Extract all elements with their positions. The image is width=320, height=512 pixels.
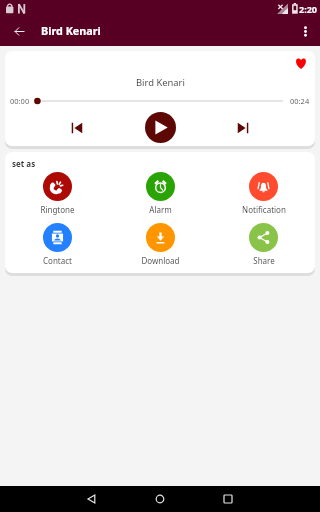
button[interactable]: Home xyxy=(147,486,173,512)
button[interactable]: Ringtone xyxy=(5,172,109,215)
staticText: Bird Kenari xyxy=(41,23,101,38)
staticText: 00:24 xyxy=(290,96,310,106)
button[interactable]: Previous xyxy=(66,117,88,139)
staticText: set as xyxy=(12,158,36,169)
button[interactable]: Share xyxy=(212,223,315,266)
button[interactable]: Play xyxy=(145,112,176,143)
button[interactable]: Back xyxy=(79,486,105,512)
button[interactable]: Contact xyxy=(5,223,109,266)
staticText: Bird Kenari xyxy=(136,76,185,89)
button[interactable]: Favorite xyxy=(292,54,310,72)
staticText: 00:00 xyxy=(10,96,30,106)
staticText: Contact xyxy=(43,255,72,266)
staticText: Ringtone xyxy=(40,204,75,215)
button[interactable]: Next xyxy=(232,117,254,139)
button[interactable]: Download xyxy=(109,223,212,266)
staticText: Share xyxy=(253,255,275,266)
button[interactable]: Notification xyxy=(212,172,315,215)
staticText: Notification xyxy=(242,204,286,215)
button[interactable]: More options xyxy=(291,17,320,46)
button[interactable]: Recents xyxy=(215,486,241,512)
staticText: 2:20 xyxy=(299,3,317,15)
staticText: Download xyxy=(141,255,180,266)
button[interactable]: Alarm xyxy=(109,172,212,215)
button[interactable]: Back xyxy=(5,17,34,46)
staticText: Alarm xyxy=(149,204,172,215)
